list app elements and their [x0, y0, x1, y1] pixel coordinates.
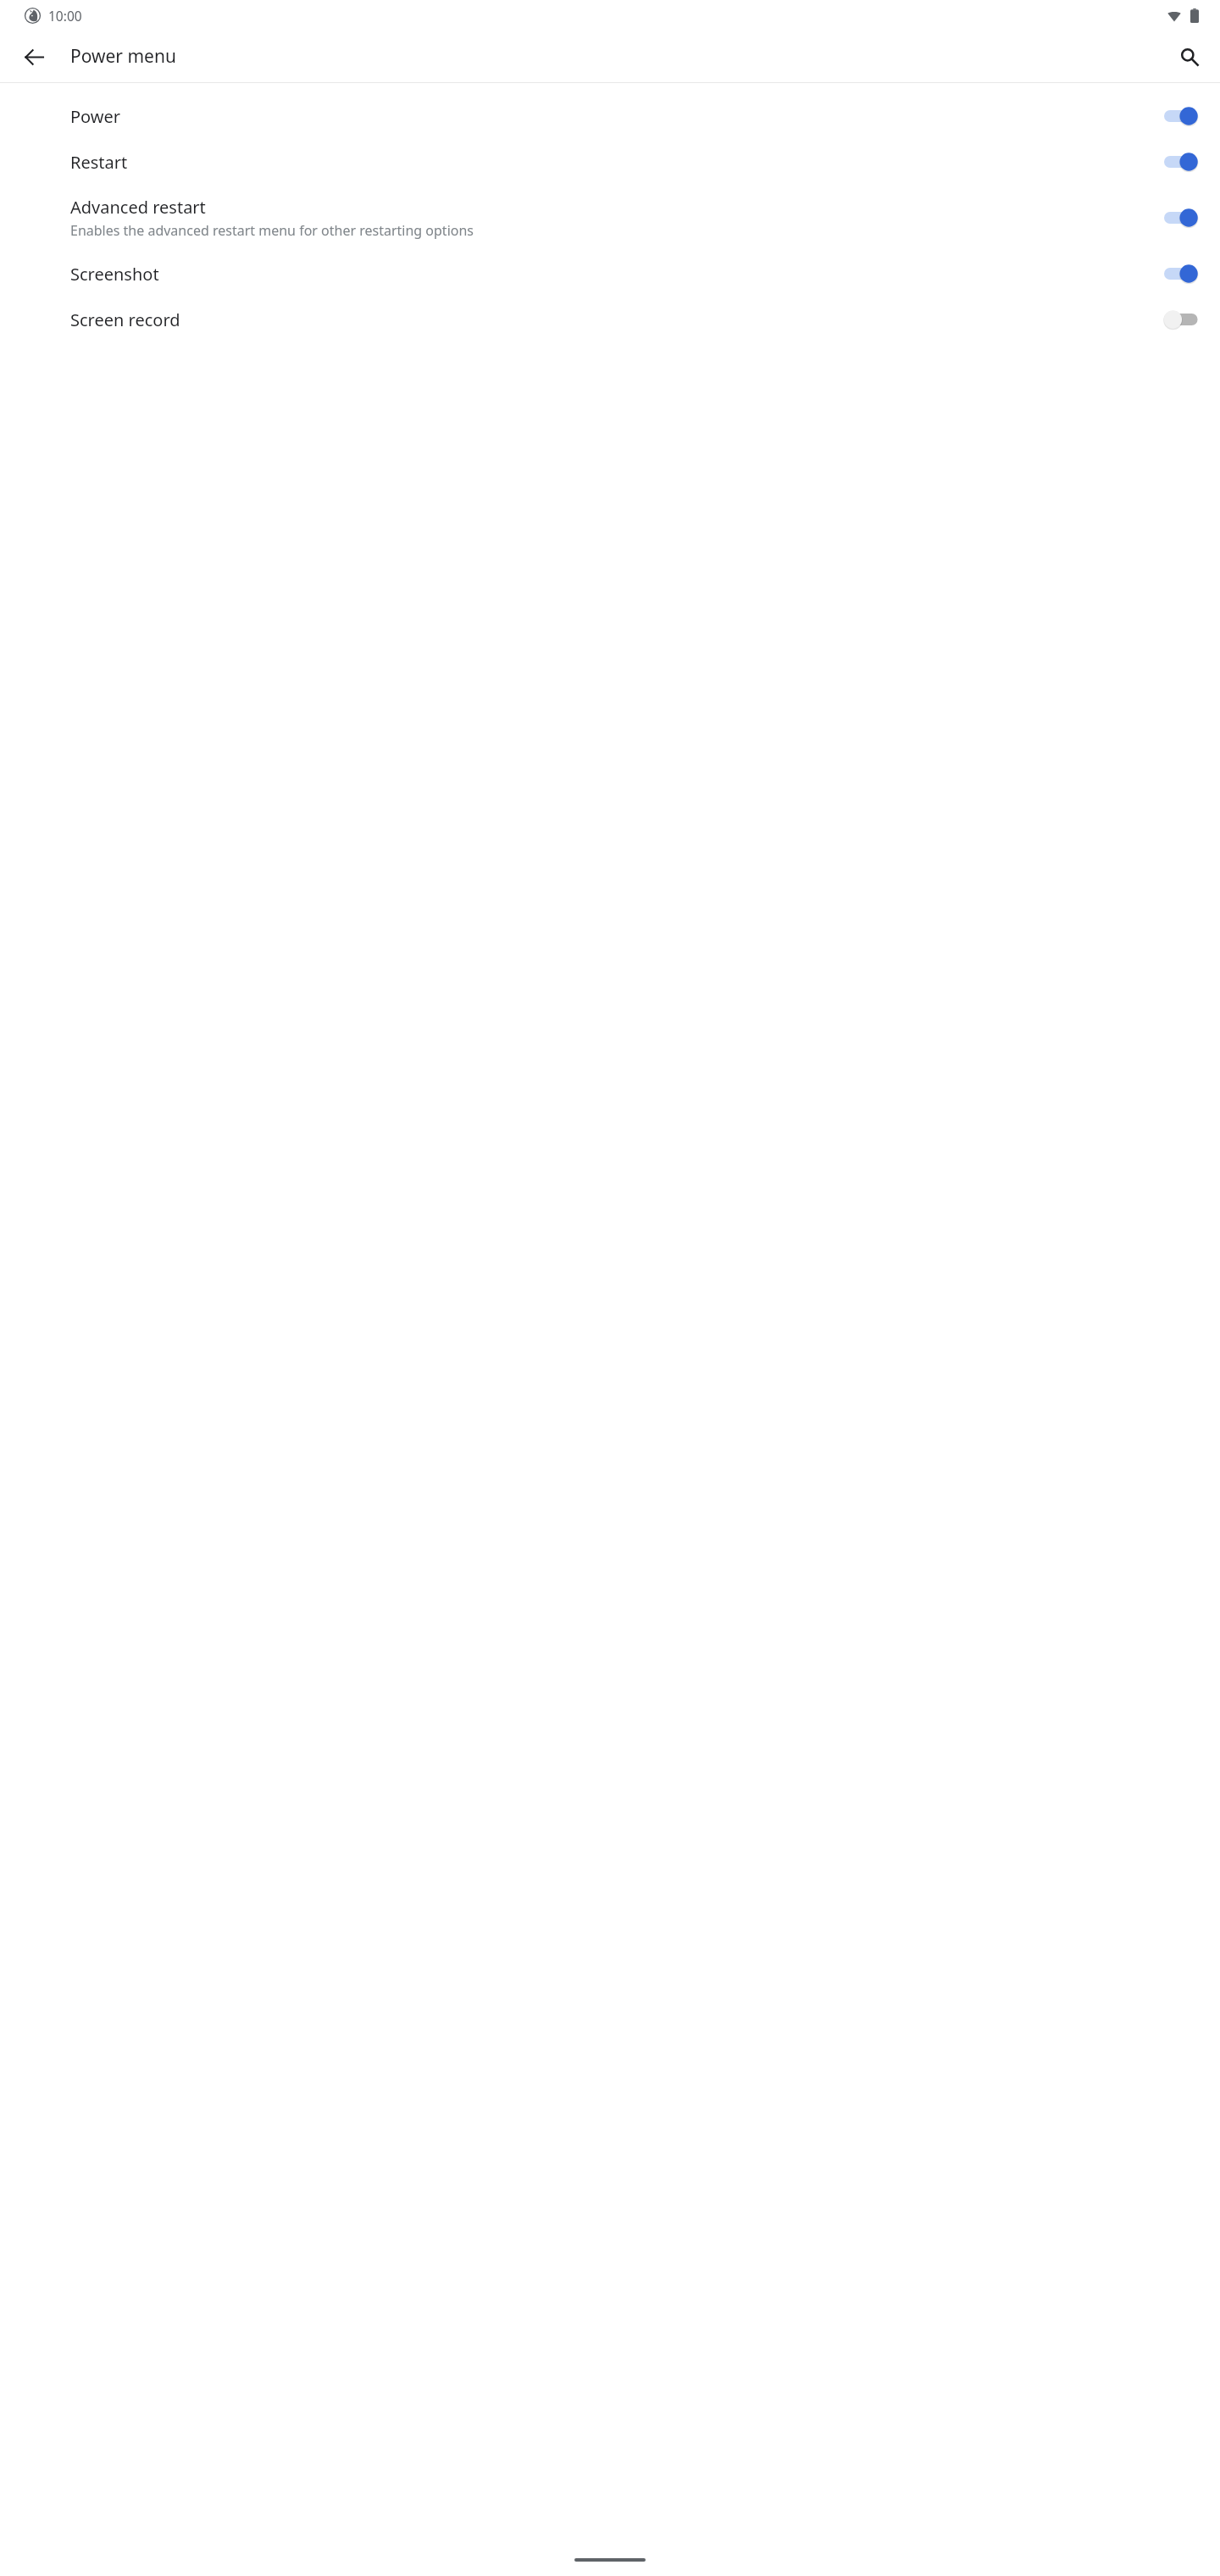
button[interactable]: Power	[0, 93, 1220, 139]
staticText: 10:00	[48, 7, 82, 25]
button[interactable]: On	[1164, 150, 1203, 174]
button[interactable]: Screenshot	[0, 251, 1220, 297]
staticText: Restart	[70, 151, 128, 174]
button[interactable]: Restart	[0, 139, 1220, 185]
staticText: Power	[70, 105, 121, 128]
button[interactable]: On	[1164, 262, 1203, 286]
button[interactable]: On	[1164, 104, 1203, 128]
button[interactable]: Off	[1164, 308, 1203, 331]
button[interactable]: On	[1164, 206, 1203, 230]
button[interactable]: Screen record	[0, 297, 1220, 342]
staticText: Power menu	[70, 44, 176, 69]
staticText: Screenshot	[70, 263, 159, 286]
staticText: Screen record	[70, 308, 180, 331]
button[interactable]: Back	[14, 36, 54, 77]
button[interactable]: Search	[1169, 36, 1210, 77]
staticText: Advanced restart	[70, 196, 206, 219]
staticText: Enables the advanced restart menu for ot…	[70, 221, 928, 240]
button[interactable]: Advanced restart	[0, 185, 1220, 251]
